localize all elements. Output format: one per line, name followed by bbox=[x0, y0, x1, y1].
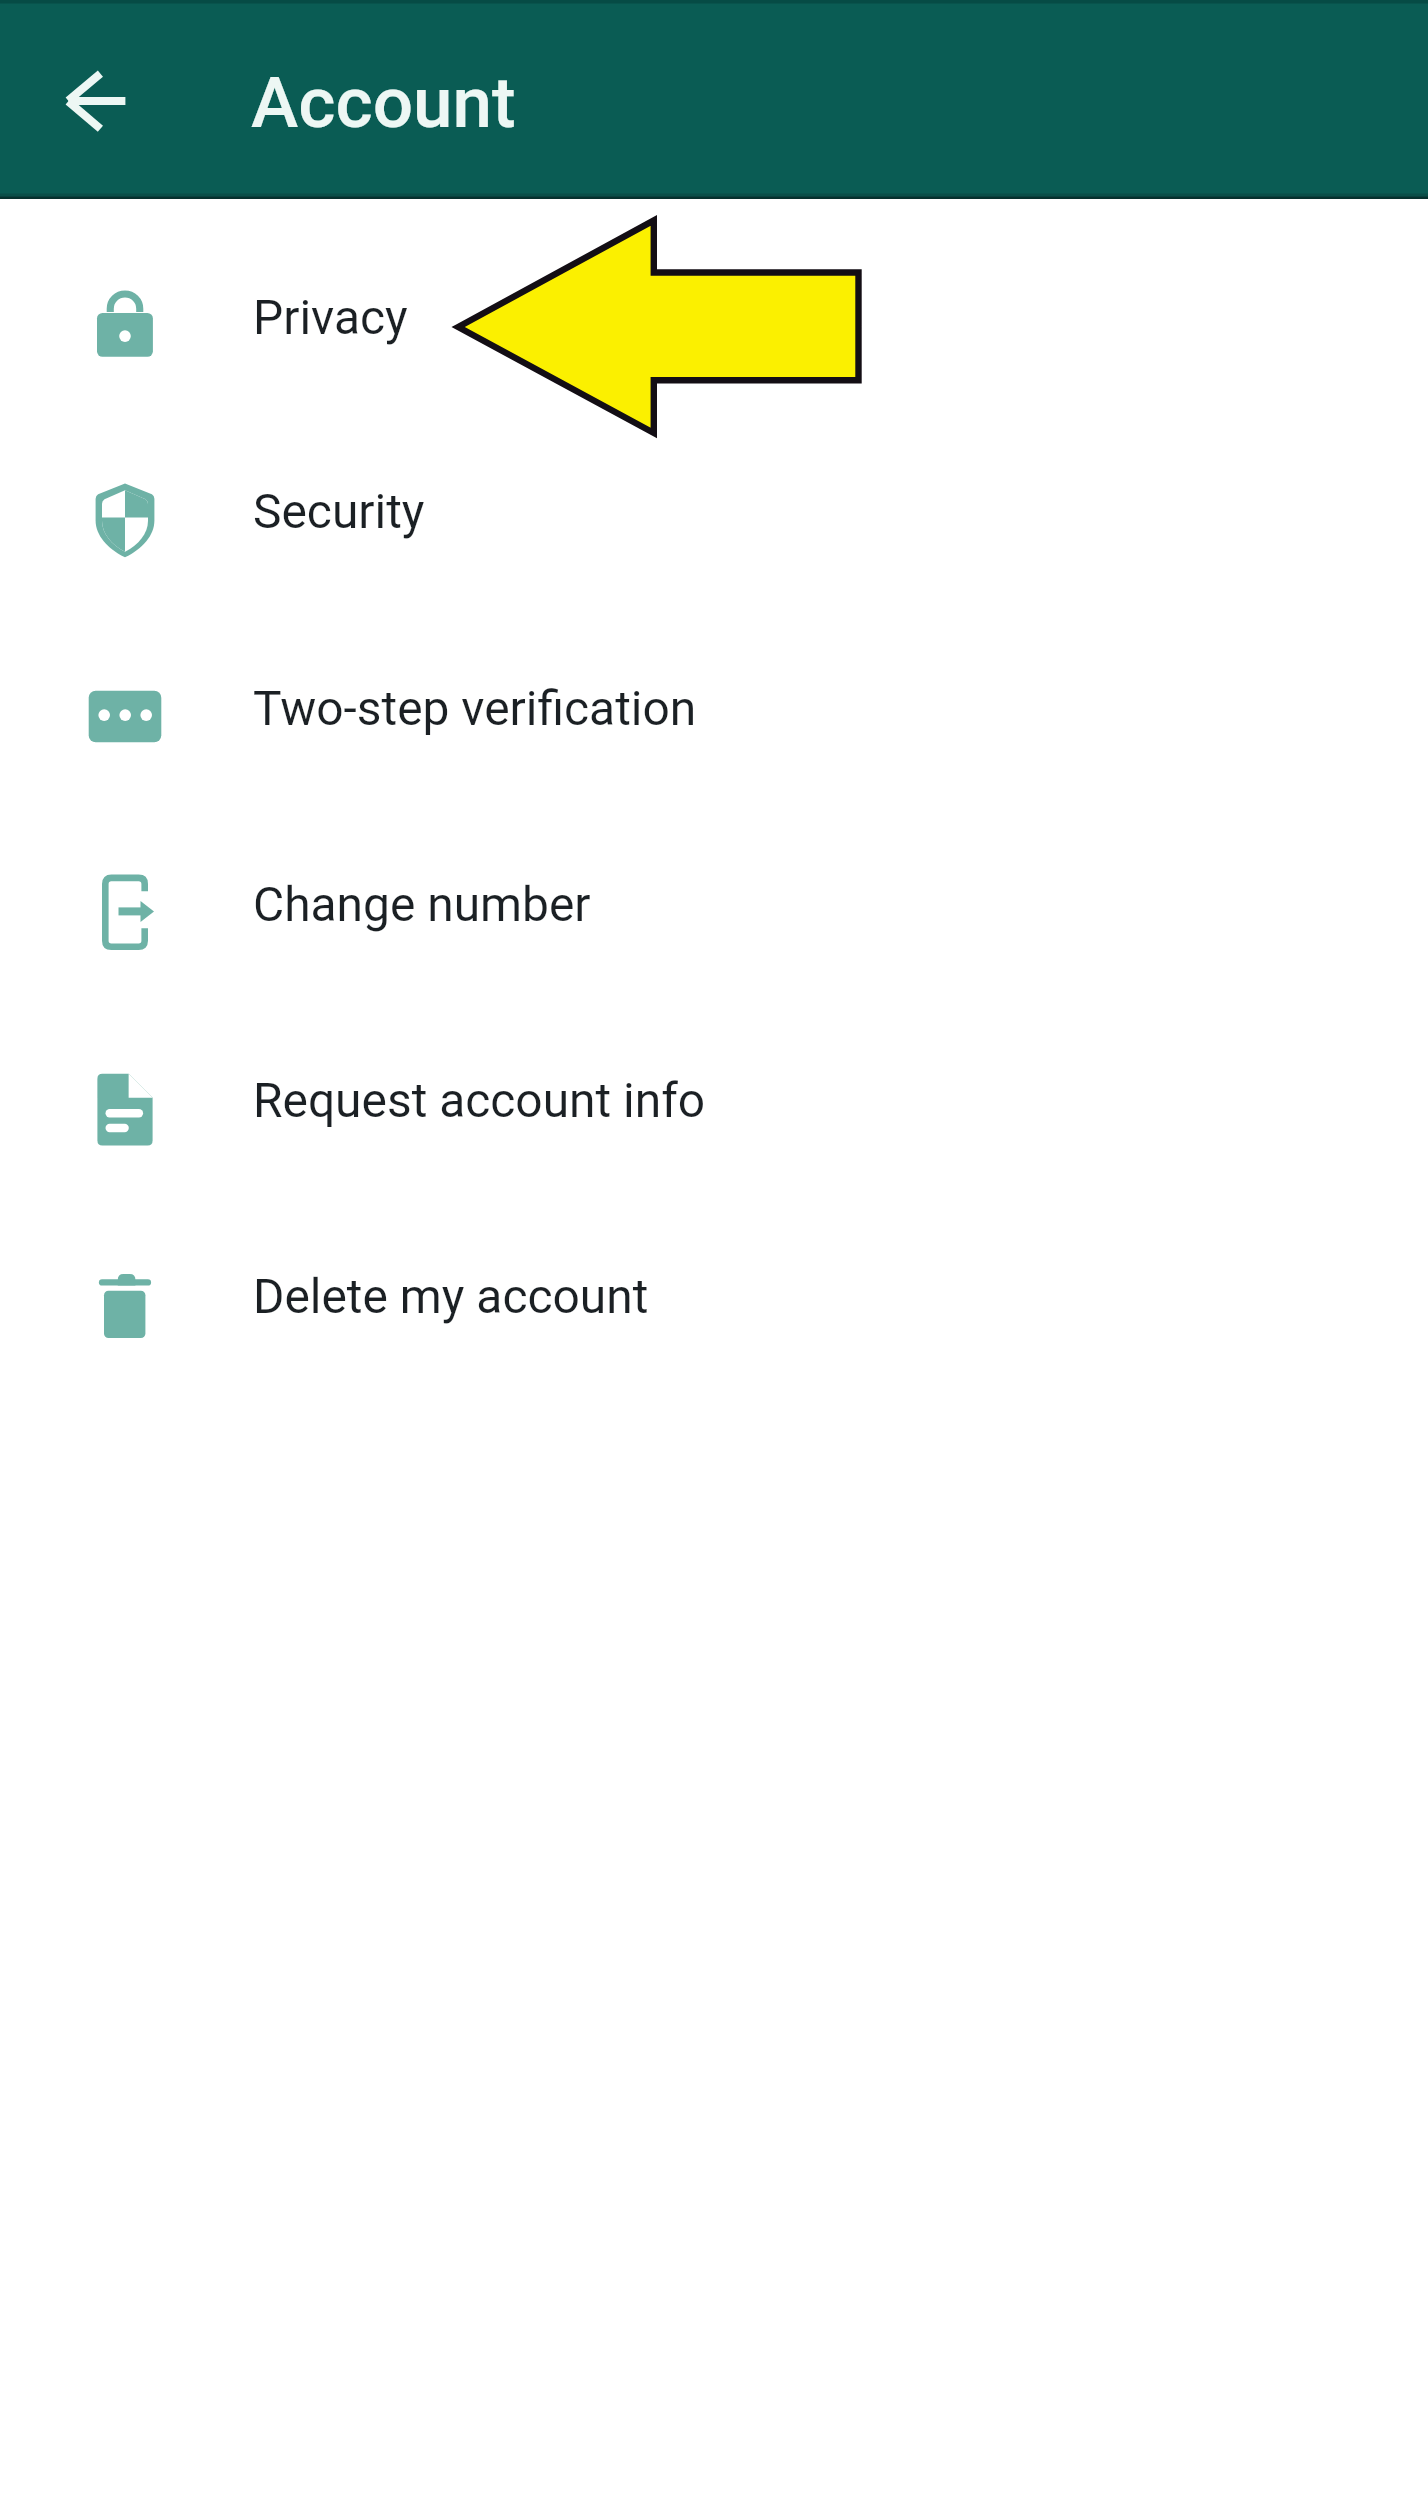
button[interactable]: Security bbox=[0, 411, 1428, 605]
button[interactable]: Change number bbox=[0, 804, 1428, 998]
button[interactable]: Request account info bbox=[0, 1000, 1428, 1194]
button[interactable]: Navigate up bbox=[31, 35, 163, 167]
staticText: Two-step verification bbox=[253, 681, 697, 737]
staticText: Change number bbox=[253, 877, 591, 933]
button[interactable]: Delete my account bbox=[0, 1196, 1428, 1390]
staticText: Account bbox=[251, 61, 516, 144]
button[interactable]: Privacy bbox=[0, 217, 1428, 411]
button[interactable]: Two-step verification bbox=[0, 608, 1428, 802]
staticText: Privacy bbox=[253, 290, 408, 346]
staticText: Request account info bbox=[253, 1073, 706, 1129]
staticText: Security bbox=[253, 484, 425, 540]
staticText: Delete my account bbox=[253, 1269, 649, 1325]
